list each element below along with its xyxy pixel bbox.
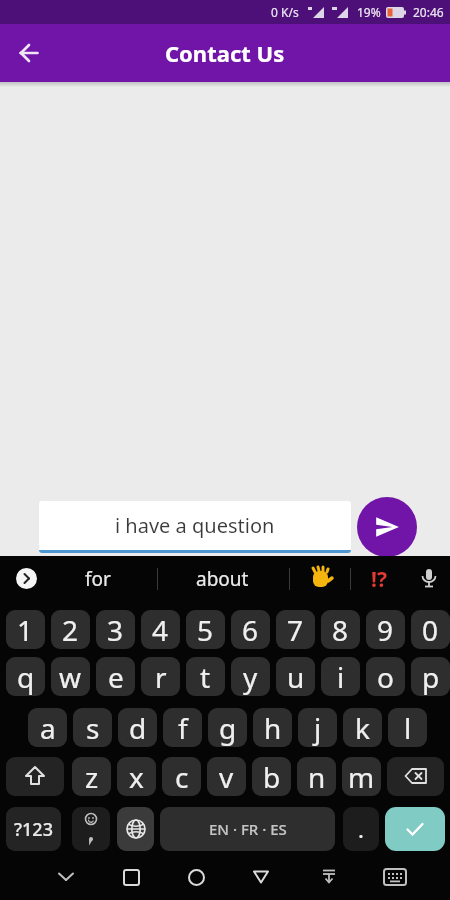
button[interactable]: for [50,561,146,597]
staticText: e [108,658,124,696]
button[interactable]: y [231,657,270,696]
button[interactable]: u [276,657,315,696]
button[interactable]: l [388,708,427,747]
button[interactable] [412,561,446,597]
button[interactable]: e [96,657,135,696]
button[interactable] [6,757,64,796]
button[interactable]: 9 [366,610,405,649]
staticText: k [355,709,370,747]
staticText: d [129,709,147,747]
button[interactable] [306,564,336,594]
button[interactable]: m [342,757,381,796]
button[interactable]: about [174,561,270,597]
button[interactable] [380,863,410,891]
staticText: n [308,758,326,796]
button[interactable] [72,807,110,851]
button[interactable] [117,863,145,891]
button[interactable] [387,757,444,796]
staticText: y [243,658,258,696]
button[interactable]: b [252,757,291,796]
button[interactable]: 0 [411,610,450,649]
button[interactable]: . [343,807,379,851]
button[interactable]: i [321,657,360,696]
button[interactable]: 2 [51,610,90,649]
staticText: s [86,709,100,747]
button[interactable] [357,497,417,557]
staticText: 0 [422,611,439,649]
button[interactable]: 6 [231,610,270,649]
button[interactable]: p [411,657,450,696]
staticText: 8 [332,611,349,649]
staticText: . [358,814,364,844]
staticText: m [348,758,375,796]
button[interactable] [247,863,275,891]
staticText: w [59,658,82,696]
button[interactable]: 1 [6,610,45,649]
staticText: 5 [197,611,214,649]
staticText: q [17,658,35,696]
button[interactable]: v [207,757,246,796]
staticText: p [422,658,440,696]
button[interactable]: k [343,708,382,747]
staticText: 20:46 [413,4,444,20]
button[interactable]: s [73,708,112,747]
button[interactable] [315,863,343,891]
staticText: t [200,658,211,696]
button[interactable] [182,863,210,891]
button[interactable]: 7 [276,610,315,649]
staticText: 6 [242,611,259,649]
button[interactable]: f [163,708,202,747]
staticText: o [377,658,394,696]
staticText: i [337,658,345,696]
button[interactable]: !? [362,561,396,597]
staticText: !? [371,565,387,594]
button[interactable]: 5 [186,610,225,649]
staticText: z [85,758,99,796]
button[interactable] [52,863,80,891]
staticText: j [314,709,322,747]
staticText: 19% [357,4,381,20]
button[interactable] [16,568,37,589]
staticText: 1 [17,611,34,649]
button[interactable]: j [298,708,337,747]
staticText: 3 [107,611,124,649]
staticText: r [155,658,167,696]
button[interactable]: o [366,657,405,696]
staticText: for [85,566,111,592]
button[interactable]: 8 [321,610,360,649]
staticText: a [40,709,56,747]
button[interactable]: x [117,757,156,796]
button[interactable]: r [141,657,180,696]
button[interactable]: h [253,708,292,747]
staticText: i have a question [115,512,275,539]
staticText: EN · FR · ES [209,819,287,839]
staticText: about [196,566,249,592]
staticText: 9 [377,611,394,649]
staticText: ?123 [14,817,53,842]
button[interactable]: 4 [141,610,180,649]
button[interactable] [12,36,46,70]
button[interactable] [117,807,154,851]
button[interactable]: ?123 [6,807,61,851]
button[interactable]: a [28,708,67,747]
staticText: b [263,758,281,796]
button[interactable]: d [118,708,157,747]
button[interactable]: i have a question [39,501,351,553]
button[interactable]: q [6,657,45,696]
button[interactable]: t [186,657,225,696]
button[interactable]: c [162,757,201,796]
staticText: 7 [287,611,304,649]
staticText: 2 [62,611,79,649]
staticText: v [219,758,234,796]
button[interactable] [385,807,445,851]
staticText: h [264,709,282,747]
button[interactable]: g [208,708,247,747]
staticText: f [178,709,188,747]
button[interactable]: z [72,757,111,796]
button[interactable]: EN · FR · ES [160,807,335,851]
button[interactable]: w [51,657,90,696]
staticText: c [175,758,189,796]
button[interactable]: 3 [96,610,135,649]
button[interactable]: n [297,757,336,796]
staticText: u [287,658,305,696]
